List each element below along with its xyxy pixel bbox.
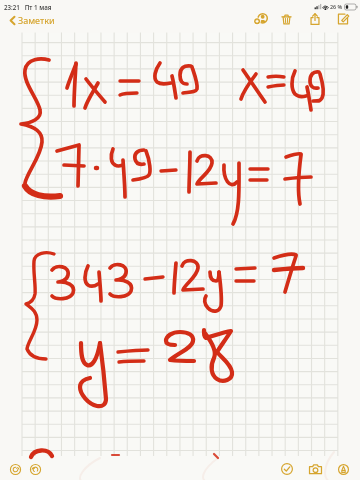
- button[interactable]: Share: [306, 10, 324, 28]
- button[interactable]: Markup: [334, 460, 352, 478]
- button[interactable]: Undo: [6, 460, 24, 478]
- button[interactable]: Redo: [26, 460, 44, 478]
- button[interactable]: Add people: [252, 10, 270, 28]
- staticText: 23:21 Пт 1 мая: [4, 3, 52, 11]
- button[interactable]: Camera: [306, 460, 324, 478]
- staticText: Заметки: [18, 14, 55, 26]
- button[interactable]: Compose: [334, 10, 352, 28]
- button[interactable]: Delete: [277, 10, 295, 28]
- button[interactable]: Done: [278, 460, 296, 478]
- button[interactable]: Заметки: [9, 13, 56, 27]
- staticText: 26 %: [330, 3, 343, 10]
